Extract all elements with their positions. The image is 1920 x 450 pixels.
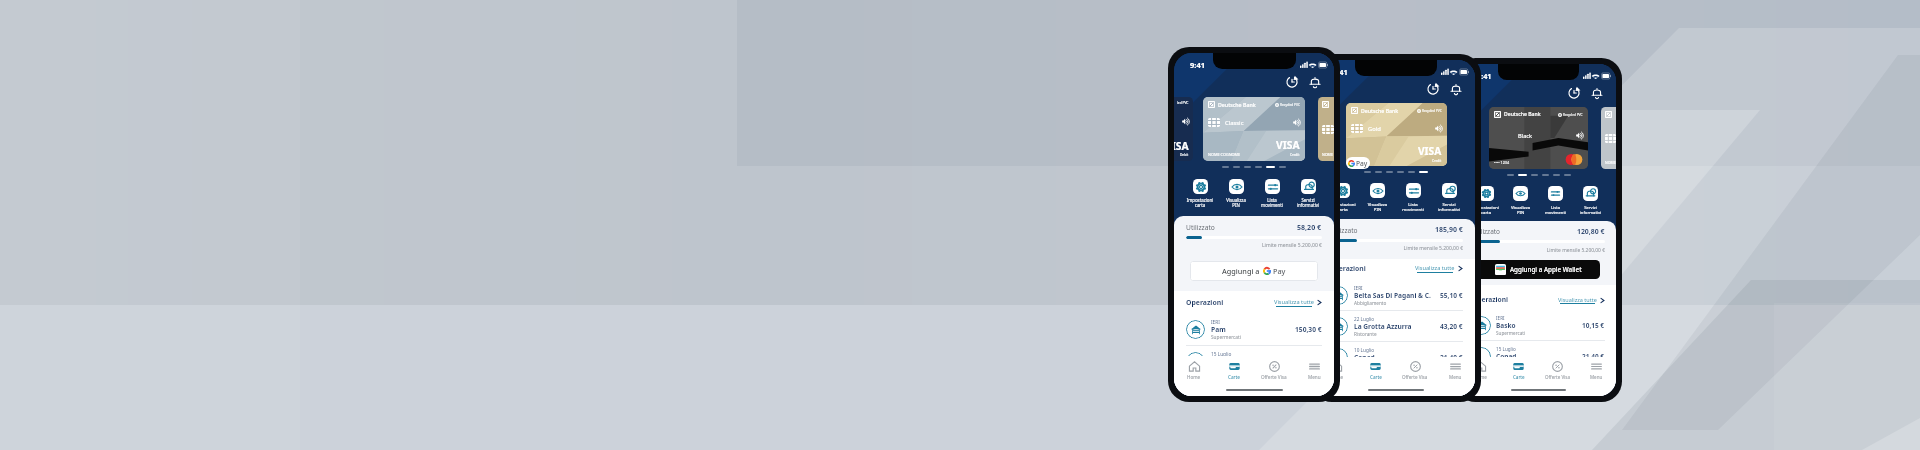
staticText: IERI [1354, 285, 1363, 291]
button[interactable]: Cronologia movimenti [1426, 82, 1440, 96]
button[interactable]: 22 Luglio [1317, 311, 1475, 341]
button[interactable]: Notifiche [1449, 82, 1463, 96]
staticText: Deutsche Bank [1218, 101, 1256, 108]
button[interactable]: Visualizza tutte [1415, 264, 1463, 273]
button[interactable]: Lista movimenti [1254, 179, 1290, 209]
button[interactable]: IERI [1174, 314, 1334, 345]
button[interactable]: IERI [1461, 310, 1616, 340]
staticText: Offerte Visa [1402, 374, 1428, 380]
button[interactable]: Notifiche [1590, 86, 1604, 100]
staticText: 55,10 € [1440, 291, 1463, 300]
button[interactable]: Carte [1214, 361, 1254, 380]
button[interactable]: Home [1461, 361, 1499, 380]
staticText: Pay [1356, 159, 1368, 168]
button[interactable]: Visualizza tutte [1274, 298, 1322, 307]
staticText: Supermercati [1354, 362, 1384, 368]
button[interactable]: Home [1317, 361, 1356, 380]
staticText: VISA [1276, 138, 1300, 152]
button[interactable]: Impostazioni carta [1182, 179, 1218, 209]
button[interactable]: Menu [1435, 361, 1475, 380]
staticText: Offerte Visa [1261, 374, 1287, 380]
button[interactable]: Offerte Visa [1254, 361, 1294, 380]
staticText: Supermercati [1496, 330, 1526, 336]
staticText: Menu [1308, 374, 1321, 380]
staticText: Menu [1449, 374, 1462, 380]
staticText: 58,20 € [1297, 222, 1322, 232]
staticText: NOME COGNOME [1208, 152, 1241, 157]
staticText: 21,40 € [1440, 353, 1463, 362]
button[interactable]: Lista movimenti [1395, 183, 1431, 212]
staticText: Home [1187, 374, 1201, 380]
button[interactable]: Cronologia movimenti [1285, 75, 1299, 89]
staticText: Conad [1211, 357, 1233, 366]
staticText: Black [1518, 132, 1533, 140]
staticText: Abbigliamento [1354, 300, 1387, 306]
staticText: VISA [1174, 139, 1189, 153]
staticText: Impostazioni carta [1469, 204, 1503, 215]
button[interactable]: Lista movimenti [1538, 186, 1573, 215]
button[interactable]: Cronologia movimenti [1567, 86, 1581, 100]
staticText: Debit [1180, 153, 1189, 157]
staticText: Pay [1273, 266, 1286, 276]
button[interactable]: Aggiungi a Apple Wallet [1477, 260, 1600, 279]
staticText: Deutsche Bank [1361, 107, 1399, 114]
staticText: Lista movimenti [1395, 201, 1431, 212]
button[interactable]: Visualizza PIN [1218, 179, 1254, 209]
staticText: Limite mensile 5.200,00 € [1186, 242, 1322, 249]
staticText: 9:41 [1477, 71, 1492, 81]
staticText: Visualizza tutte [1558, 296, 1597, 303]
staticText: Basko [1496, 321, 1516, 330]
staticText: Servizi informativi [1431, 201, 1467, 212]
staticText: •••• 4598 [1351, 157, 1367, 162]
button[interactable]: Carte [1499, 361, 1538, 380]
staticText: Visualizza PIN [1503, 204, 1538, 215]
staticText: Conad [1496, 352, 1517, 361]
staticText: Offerte Visa [1545, 374, 1570, 380]
staticText: led PVC [1320, 107, 1332, 111]
staticText: 10 Luglio [1354, 347, 1375, 353]
staticText: Gold [1368, 125, 1381, 133]
staticText: 43,20 € [1440, 322, 1463, 331]
button[interactable]: Notifiche [1308, 75, 1322, 89]
button[interactable]: Home [1174, 361, 1214, 380]
button[interactable]: Servizi informativi [1290, 179, 1326, 209]
staticText: Operazioni [1329, 264, 1366, 273]
staticText: 9:41 [1333, 67, 1348, 77]
staticText: 22 Luglio [1354, 316, 1375, 322]
staticText: 9:41 [1190, 60, 1205, 70]
button[interactable]: Servizi informativi [1573, 186, 1608, 215]
staticText: Visualizza PIN [1360, 201, 1395, 212]
button[interactable]: Visualizza PIN [1360, 183, 1395, 212]
staticText: Supermercati [1211, 334, 1241, 340]
staticText: NOME [1605, 160, 1616, 165]
button[interactable]: Menu [1294, 361, 1334, 380]
staticText: Utilizzato [1329, 226, 1358, 235]
staticText: •••• 1234 [1494, 160, 1510, 165]
button[interactable]: IERI [1317, 280, 1475, 310]
button[interactable]: Visualizza PIN [1503, 186, 1538, 215]
button[interactable]: Impostazioni carta [1325, 183, 1360, 212]
staticText: Servizi informativi [1573, 204, 1608, 215]
button[interactable]: Impostazioni carta [1469, 186, 1503, 215]
staticText: IERI [1211, 319, 1220, 325]
staticText: Credit [1323, 158, 1332, 162]
staticText: Servizi informativi [1290, 197, 1326, 209]
staticText: 15 Luglio [1211, 351, 1232, 357]
staticText: Impostazioni carta [1182, 197, 1218, 209]
staticText: Supermercati [1496, 361, 1526, 367]
staticText: Pam [1211, 325, 1226, 334]
staticText: Limite mensile 5.200,00 € [1329, 245, 1463, 252]
button[interactable]: Servizi informativi [1431, 183, 1467, 212]
button[interactable]: Menu [1577, 361, 1616, 380]
button[interactable]: Aggiungi a [1190, 261, 1318, 281]
button[interactable]: Visualizza tutte [1558, 296, 1605, 304]
button[interactable]: Offerte Visa [1395, 361, 1435, 380]
staticText: Menu [1590, 374, 1603, 380]
button[interactable]: Offerte Visa [1538, 361, 1577, 380]
staticText: IERI [1496, 315, 1505, 321]
staticText: VISA [1317, 144, 1332, 158]
staticText: Recycled PVC [1422, 109, 1442, 113]
button[interactable]: Carte [1356, 361, 1395, 380]
